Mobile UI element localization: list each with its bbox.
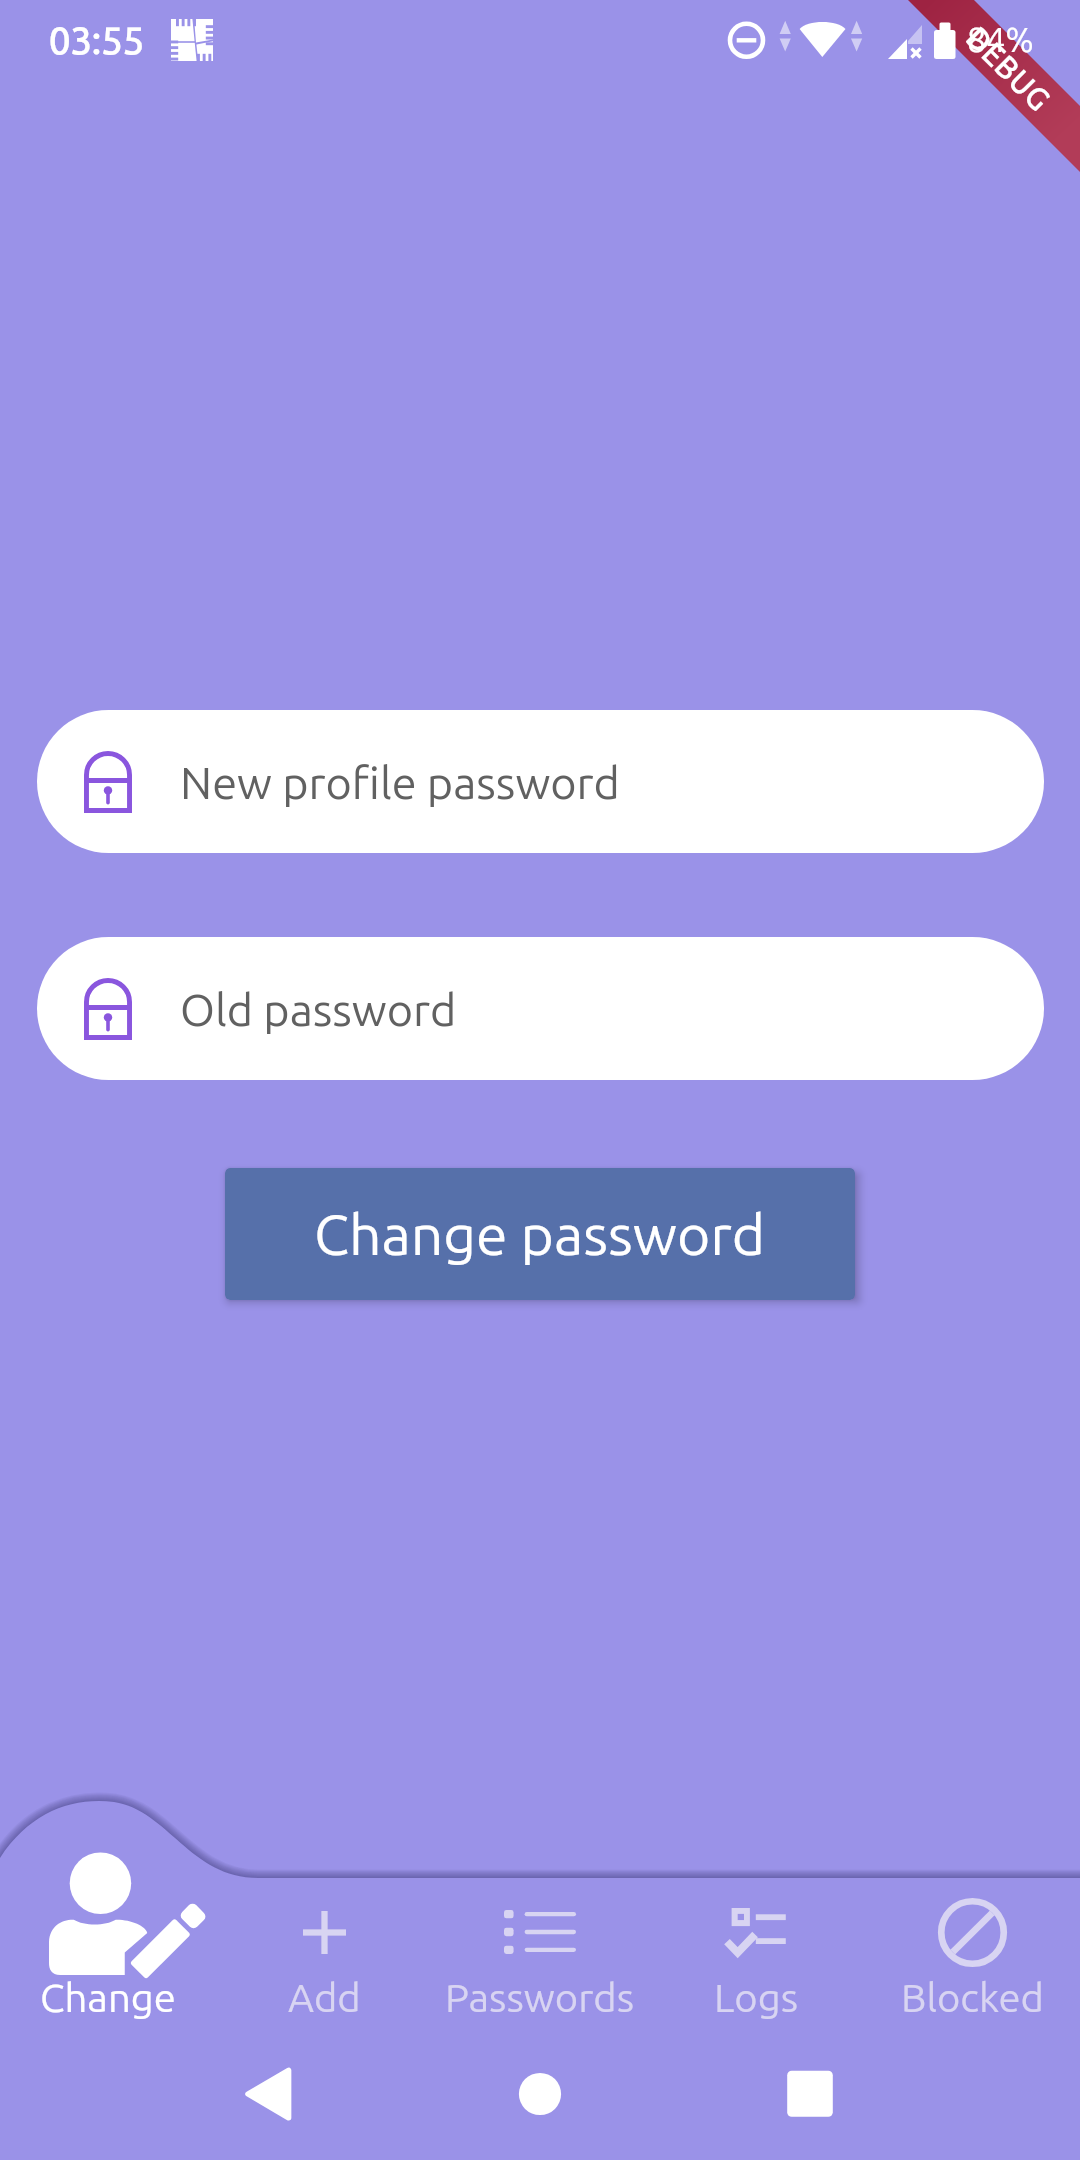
staticText: 03:55	[49, 19, 145, 62]
staticText: Passwords	[445, 1975, 635, 2020]
button[interactable]: Logs	[648, 1848, 864, 2018]
button[interactable]: Change	[0, 1848, 216, 2018]
button[interactable]: New profile password	[37, 710, 1044, 853]
button[interactable]: Blocked	[864, 1848, 1080, 2018]
button[interactable]: Change password	[225, 1168, 855, 1300]
staticText: New profile password	[180, 757, 620, 807]
button[interactable]: Old password	[37, 937, 1044, 1080]
staticText: Blocked	[901, 1975, 1044, 2020]
staticText: Add	[288, 1975, 361, 2020]
staticText: Change password	[314, 1202, 766, 1266]
staticText: Change	[40, 1975, 176, 2020]
button[interactable]: Add	[216, 1848, 432, 2018]
staticText: Logs	[714, 1975, 799, 2020]
staticText: 84%	[967, 20, 1034, 58]
staticText: Old password	[180, 984, 457, 1034]
staticText: DEBUG	[960, 20, 1058, 118]
button[interactable]: Passwords	[432, 1848, 648, 2018]
